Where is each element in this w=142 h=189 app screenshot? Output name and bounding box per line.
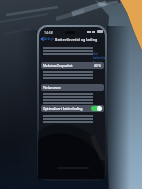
- staticText: 14:58: [44, 30, 53, 35]
- button[interactable]: Optimalisert batterilading: [41, 105, 104, 112]
- staticText: Optimalisert batterilading: [43, 107, 83, 111]
- staticText: Avbryt: [44, 37, 54, 41]
- button[interactable]: Optimised battery charging: [91, 106, 102, 111]
- button[interactable]: Maksimal kapasitet: [41, 62, 104, 69]
- staticText: Maksimal kapasitet: [43, 64, 73, 68]
- staticText: 40 %: [94, 64, 102, 68]
- button[interactable]: Back: [41, 36, 54, 42]
- staticText: Ytelsesevne: [43, 86, 61, 90]
- staticText: Om batterihelse: [93, 52, 105, 64]
- staticText: Batterilevetid og lading: [55, 37, 98, 42]
- button[interactable]: Ytelsesevne: [41, 84, 104, 91]
